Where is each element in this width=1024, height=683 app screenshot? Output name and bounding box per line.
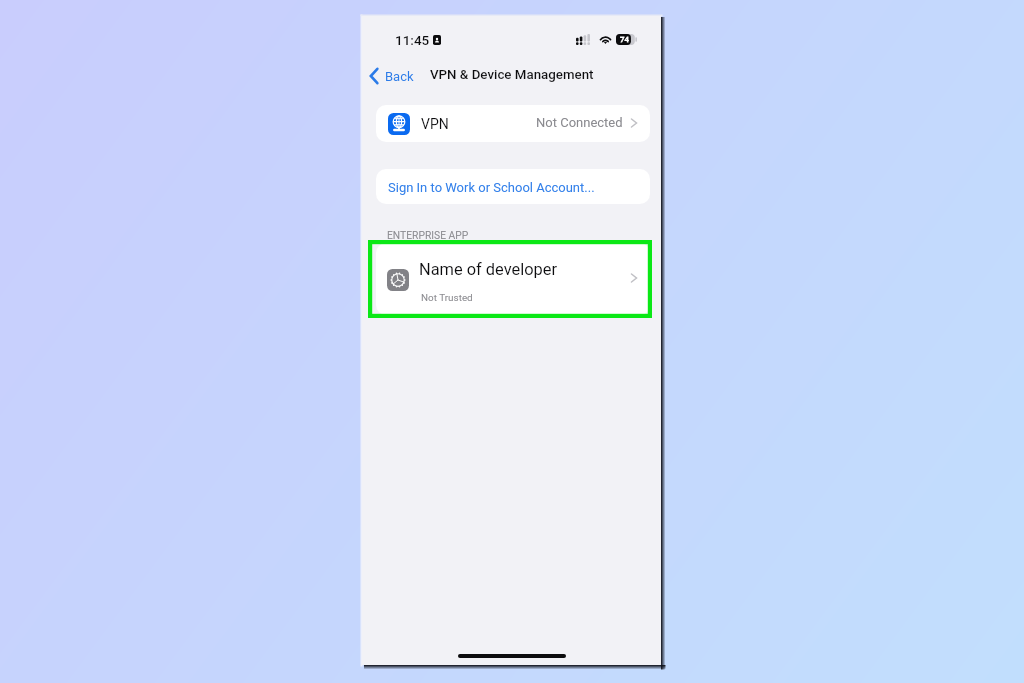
staticText: Back bbox=[385, 69, 414, 84]
staticText: Sign In to Work or School Account... bbox=[388, 180, 595, 195]
staticText: 11:45 bbox=[395, 32, 430, 48]
staticText: Name of developer bbox=[419, 260, 557, 279]
button[interactable]: Back bbox=[366, 62, 420, 90]
button[interactable]: VPN bbox=[376, 105, 650, 142]
staticText: VPN & Device Management bbox=[430, 67, 594, 83]
staticText: VPN bbox=[421, 116, 449, 132]
staticText: 74 bbox=[620, 35, 629, 44]
staticText: Not Connected bbox=[536, 115, 623, 130]
staticText: ENTERPRISE APP bbox=[387, 229, 469, 241]
button[interactable]: Sign In to Work or School Account... bbox=[376, 169, 650, 204]
button[interactable]: Name of developer bbox=[376, 243, 650, 315]
staticText: Not Trusted bbox=[421, 292, 473, 304]
